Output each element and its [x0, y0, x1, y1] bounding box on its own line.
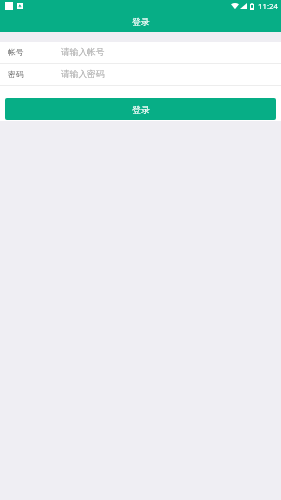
button[interactable]: 密码 [0, 64, 281, 85]
other: Battery [250, 3, 254, 10]
staticText: 请输入密码 [61, 69, 105, 80]
other: Wi-Fi [231, 3, 239, 9]
button[interactable]: 登录 [5, 98, 276, 120]
staticText: 登录 [132, 17, 150, 28]
staticText: 帐号 [8, 48, 24, 58]
other: Notification [17, 3, 23, 9]
staticText: 密码 [8, 70, 24, 80]
other: Mobile signal [240, 3, 247, 9]
button[interactable]: 帐号 [0, 42, 281, 63]
staticText: 登录 [132, 104, 150, 115]
staticText: 请输入帐号 [61, 47, 105, 58]
staticText: 11:24 [258, 1, 278, 12]
